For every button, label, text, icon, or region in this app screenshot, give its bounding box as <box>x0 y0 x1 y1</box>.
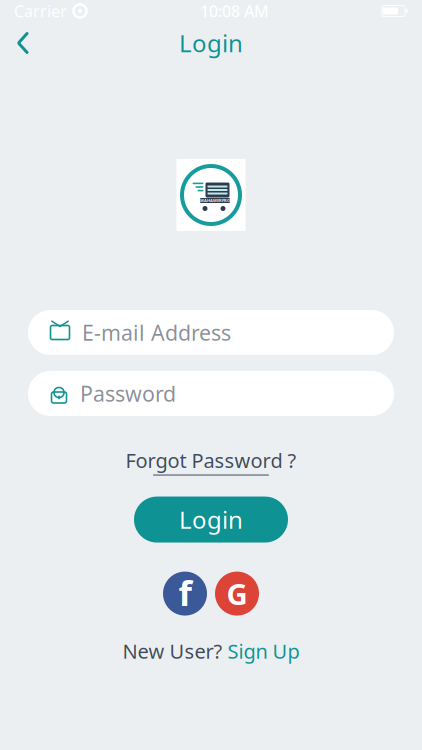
staticText: Login <box>179 504 243 535</box>
button[interactable]: Sign in with Facebook <box>163 571 207 617</box>
staticText: MAHAMERPRO <box>200 198 230 203</box>
button[interactable]: Back <box>0 22 46 64</box>
button[interactable]: Forgot Password ? <box>119 444 302 479</box>
button[interactable]: New User? <box>114 634 307 668</box>
staticText: Login <box>179 27 243 59</box>
staticText: Carrier <box>14 0 67 22</box>
staticText: 10:08 AM <box>200 0 269 22</box>
staticText: f <box>178 570 191 616</box>
staticText: New User? <box>122 638 222 664</box>
button[interactable]: Sign in with Google <box>215 572 259 616</box>
staticText: Forgot Password ? <box>125 447 296 474</box>
staticText: Password <box>80 379 176 408</box>
button[interactable]: Login <box>134 497 288 543</box>
staticText: E-mail Address <box>82 318 231 347</box>
staticText: G <box>226 574 247 613</box>
staticText: Sign Up <box>227 638 299 664</box>
